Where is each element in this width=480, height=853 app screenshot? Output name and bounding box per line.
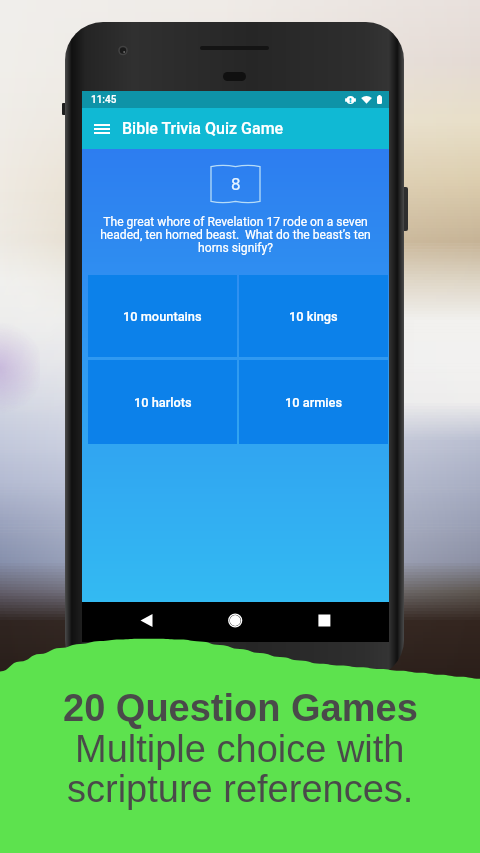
staticText: Multiple choice with	[75, 728, 405, 770]
button[interactable]: 10 armies	[239, 360, 388, 444]
staticText: 10 mountains	[123, 309, 202, 324]
staticText: Bible Trivia Quiz Game	[122, 119, 284, 138]
staticText: scripture references.	[67, 768, 414, 810]
staticText: The great whore of Revelation 17 rode on…	[90, 215, 381, 255]
button[interactable]: Open navigation menu	[82, 108, 389, 149]
staticText: 10 kings	[289, 309, 338, 324]
staticText: 11:45	[91, 94, 117, 106]
staticText: 10 armies	[285, 395, 343, 410]
staticText: 10 harlots	[134, 395, 192, 410]
button[interactable]: 10 kings	[239, 275, 388, 357]
button[interactable]: 10 mountains	[88, 275, 237, 357]
other: Navigation bar	[82, 602, 389, 642]
staticText: 20 Question Games	[63, 687, 418, 729]
button[interactable]: 10 harlots	[88, 360, 237, 444]
button[interactable]: Open navigation menu	[90, 117, 114, 141]
staticText: 8	[231, 174, 241, 194]
